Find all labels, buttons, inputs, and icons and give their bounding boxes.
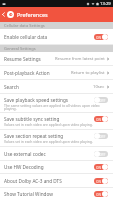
button[interactable]: Show Tutorial Window: [0, 188, 113, 200]
staticText: Use external codec: [4, 151, 46, 157]
button[interactable]: Search: [0, 80, 113, 94]
staticText: 10sec: [93, 84, 105, 90]
button[interactable]: About Dolby AC-3 and DTS: [0, 174, 113, 188]
staticText: Return to playlist: [71, 70, 105, 76]
button[interactable]: Switch on: [94, 191, 108, 197]
button[interactable]: Use external codec: [0, 147, 113, 161]
button[interactable]: Post-playback Action: [0, 66, 113, 80]
button[interactable]: Switch on: [94, 178, 108, 184]
staticText: Preferences: [17, 11, 48, 18]
button[interactable]: Switch on: [94, 164, 108, 170]
staticText: Values set in each video are applied upo…: [4, 139, 93, 144]
button[interactable]: Save subtitle sync setting: [0, 113, 113, 130]
staticText: Show Tutorial Window: [4, 191, 53, 197]
button[interactable]: Switch on: [94, 34, 108, 40]
staticText: ON: [96, 165, 102, 169]
staticText: ON: [96, 192, 102, 196]
button[interactable]: Resume Settings: [0, 52, 113, 66]
button[interactable]: Save playback speed settings: [0, 94, 113, 113]
staticText: Enable cellular data: [4, 34, 48, 40]
staticText: Cellular data Settings: [4, 23, 45, 28]
button[interactable]: Switch off: [94, 133, 108, 139]
staticText: OFF: [99, 134, 106, 138]
staticText: Post-playback Action: [4, 70, 50, 76]
button[interactable]: Navigate up: [0, 7, 6, 22]
button[interactable]: Switch on: [94, 116, 108, 122]
staticText: Resume Settings: [4, 56, 41, 62]
button[interactable]: Enable cellular data: [0, 29, 113, 45]
button[interactable]: Switch off: [94, 97, 108, 103]
staticText: Save playback speed settings: [4, 97, 69, 103]
staticText: 13:29: [100, 1, 111, 7]
staticText: ON: [96, 179, 102, 183]
staticText: Save section repeat setting: [4, 133, 64, 139]
staticText: Values set in each video are applied upo…: [4, 122, 93, 127]
staticText: Search: [4, 84, 19, 90]
staticText: OFF: [99, 152, 106, 156]
staticText: ON: [96, 117, 102, 121]
button[interactable]: Use HW Decoding: [0, 161, 113, 174]
staticText: Resume from latest point: [55, 56, 105, 62]
staticText: Save subtitle sync setting: [4, 116, 60, 122]
staticText: General Settings: [4, 46, 36, 51]
button[interactable]: Switch off: [94, 151, 108, 157]
staticText: ON: [96, 35, 102, 39]
staticText: The same setting values are applied to a…: [4, 103, 108, 111]
staticText: OFF: [99, 98, 106, 102]
staticText: Use HW Decoding: [4, 164, 44, 170]
button[interactable]: Save section repeat setting: [0, 130, 113, 147]
staticText: About Dolby AC-3 and DTS: [4, 178, 62, 184]
